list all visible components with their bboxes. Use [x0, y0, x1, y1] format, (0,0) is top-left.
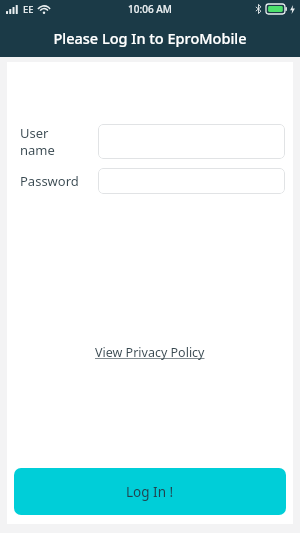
- other: Signal strength: [6, 5, 19, 14]
- other: Bluetooth: [255, 4, 262, 14]
- other: Battery: [266, 4, 288, 14]
- button[interactable]: Log In !: [14, 468, 286, 515]
- staticText: User name: [20, 124, 55, 159]
- staticText: View Privacy Policy: [95, 344, 205, 361]
- staticText: 10:06 AM: [128, 2, 172, 16]
- other: Charging: [290, 5, 295, 14]
- other: Wi-Fi: [38, 5, 50, 14]
- staticText: EE: [23, 3, 34, 16]
- staticText: Password: [20, 172, 79, 190]
- staticText: Please Log In to EproMobile: [53, 28, 247, 48]
- button[interactable]: [98, 168, 285, 194]
- staticText: Log In !: [126, 483, 174, 501]
- button[interactable]: [98, 124, 285, 159]
- button[interactable]: View Privacy Policy: [91, 341, 209, 364]
